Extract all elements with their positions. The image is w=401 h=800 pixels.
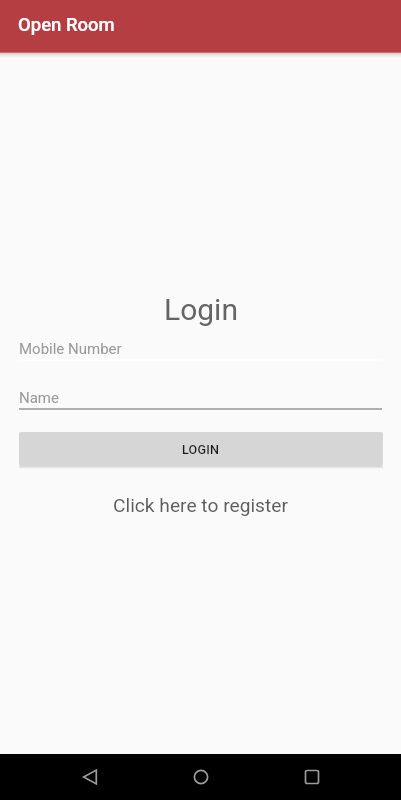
staticText: Open Room — [18, 14, 115, 36]
button[interactable]: Mobile Number — [0, 334, 401, 361]
button[interactable]: Click here to register — [107, 492, 294, 519]
staticText: Name — [19, 389, 59, 407]
staticText: Login — [164, 292, 238, 327]
staticText: Click here to register — [113, 494, 288, 517]
button[interactable]: Name — [0, 383, 401, 410]
staticText: LOGIN — [182, 442, 220, 457]
staticText: Mobile Number — [19, 340, 122, 358]
button[interactable]: Back — [67, 754, 113, 800]
button[interactable]: LOGIN — [19, 432, 383, 466]
button[interactable]: Home — [178, 754, 224, 800]
button[interactable]: Recent apps — [289, 754, 335, 800]
